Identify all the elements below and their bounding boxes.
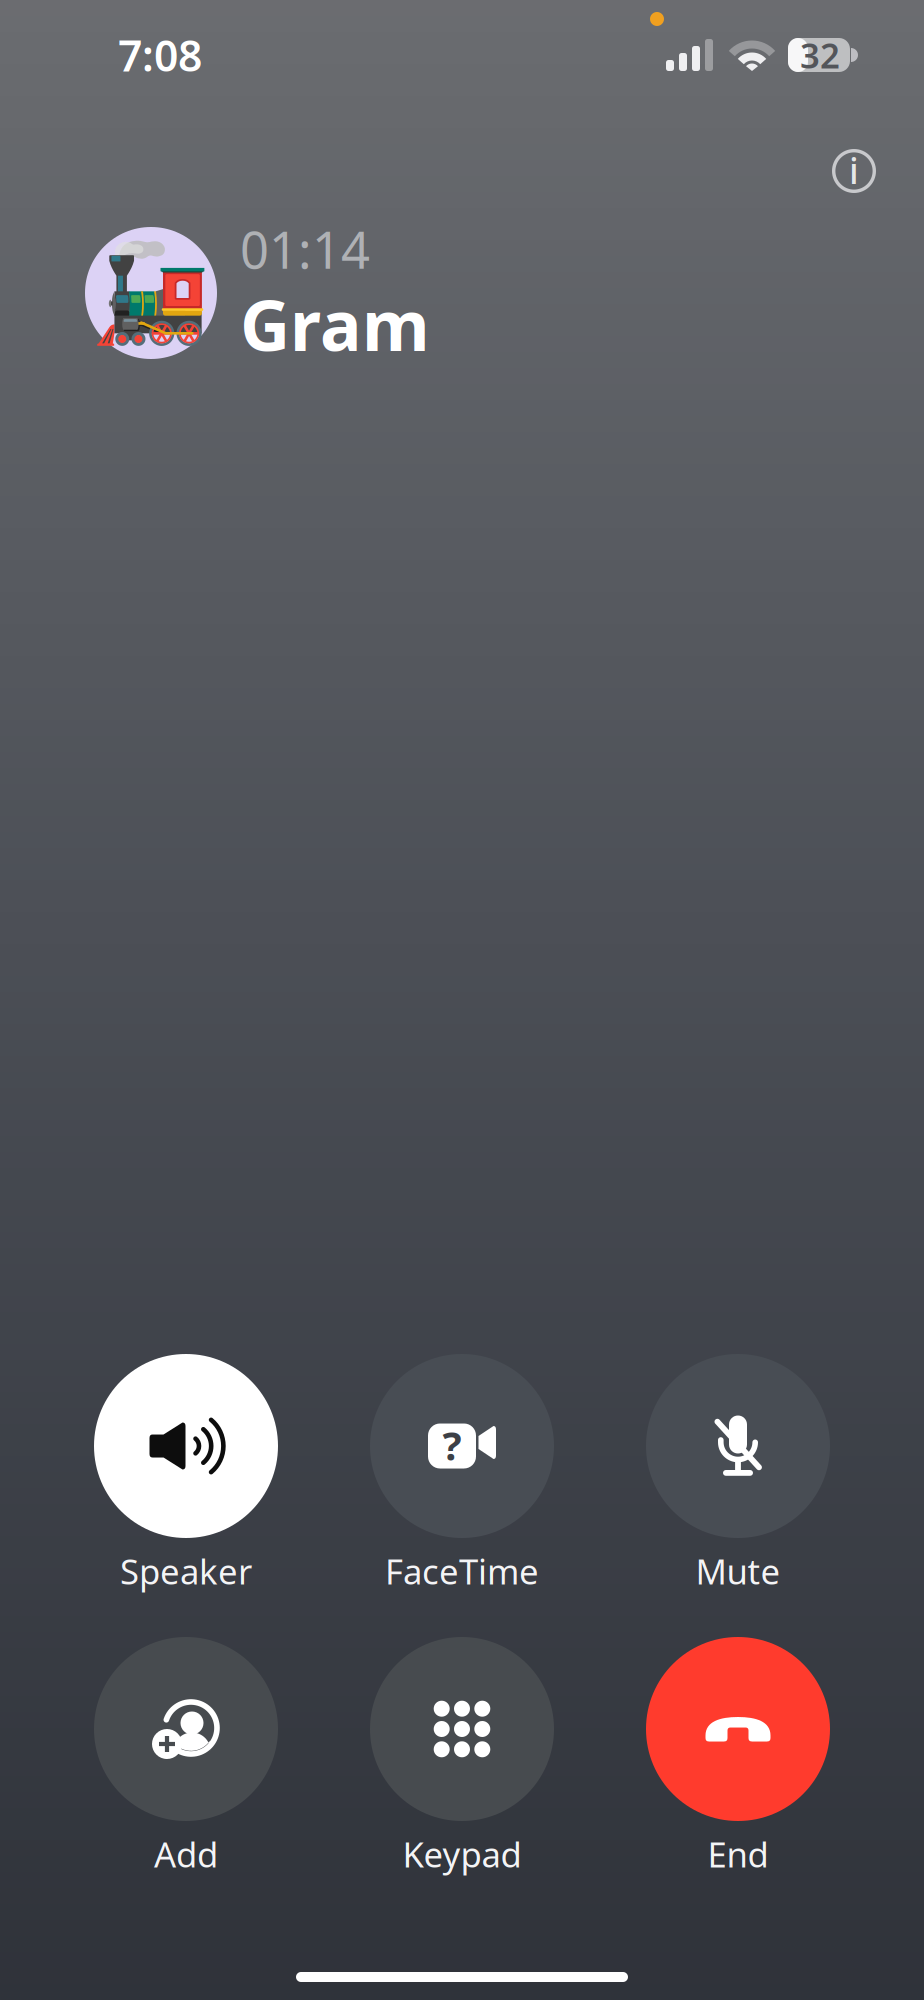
staticText: End: [707, 1831, 768, 1877]
staticText: Speaker: [120, 1548, 252, 1594]
staticText: Mute: [695, 1548, 780, 1594]
button[interactable]: Keypad: [324, 1637, 600, 1872]
button[interactable]: Call details: [816, 133, 892, 209]
staticText: ?: [442, 1418, 461, 1471]
staticText: Add: [154, 1831, 218, 1877]
staticText: 32: [800, 32, 840, 78]
staticText: Gram: [240, 278, 430, 370]
staticText: 🚂: [91, 238, 211, 348]
staticText: Keypad: [402, 1831, 521, 1877]
button[interactable]: Speaker: [48, 1354, 324, 1589]
staticText: 01:14: [240, 215, 370, 283]
staticText: i: [849, 146, 859, 194]
button[interactable]: End: [600, 1637, 876, 1872]
button[interactable]: Add: [48, 1637, 324, 1872]
button[interactable]: ?: [324, 1354, 600, 1589]
button[interactable]: Mute: [600, 1354, 876, 1589]
staticText: FaceTime: [385, 1548, 539, 1594]
staticText: 7:08: [118, 27, 202, 83]
